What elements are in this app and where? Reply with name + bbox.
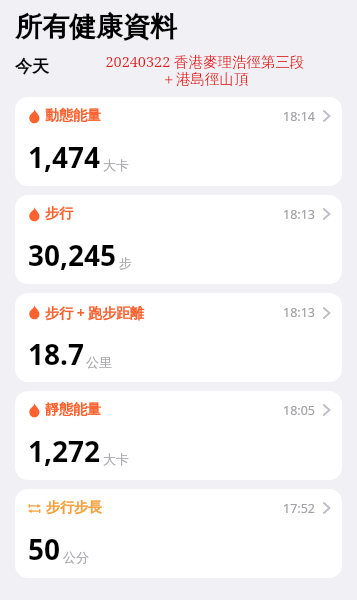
staticText: 公分 — [63, 549, 89, 565]
staticText: 20240322 香港麥理浩徑第三段 ＋港島徑山頂 — [59, 51, 351, 88]
staticText: 步行 — [45, 205, 73, 223]
button[interactable]: 步行 + 跑步距離 — [15, 293, 342, 382]
staticText: 步行步長 — [46, 499, 102, 517]
button[interactable]: 靜態能量 — [15, 391, 342, 480]
staticText: 18.7 — [28, 335, 84, 373]
staticText: 50 — [28, 530, 61, 568]
staticText: 18:14 — [283, 108, 315, 125]
staticText: 1,272 — [28, 432, 101, 470]
staticText: 17:52 — [283, 500, 315, 517]
staticText: 公里 — [86, 354, 112, 370]
staticText: 30,245 — [28, 236, 117, 274]
staticText: 步行 + 跑步距離 — [45, 303, 145, 322]
button[interactable]: Step length — [15, 489, 342, 578]
other: Step length — [28, 502, 41, 515]
staticText: 步 — [119, 255, 132, 271]
button[interactable]: 步行 — [15, 195, 342, 284]
staticText: 18:05 — [283, 402, 315, 419]
staticText: 大卡 — [103, 157, 129, 173]
staticText: 18:13 — [283, 206, 315, 223]
staticText: 所有健康資料 — [15, 10, 177, 44]
staticText: 今天 — [15, 56, 49, 77]
staticText: 18:13 — [283, 304, 315, 321]
staticText: 動態能量 — [45, 107, 101, 125]
staticText: 靜態能量 — [45, 401, 101, 419]
staticText: 大卡 — [103, 451, 129, 467]
button[interactable]: 動態能量 — [15, 97, 342, 186]
staticText: 1,474 — [28, 138, 101, 176]
